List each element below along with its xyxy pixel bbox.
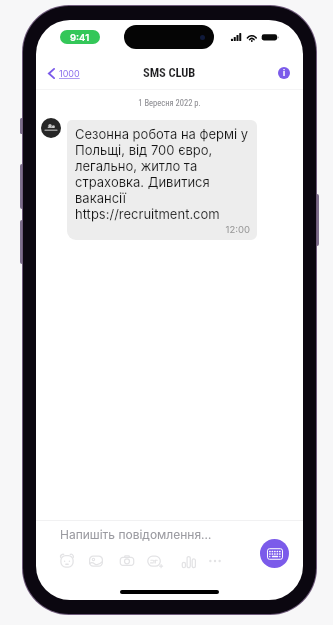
staticText: i	[283, 68, 286, 78]
staticText: SMS CLUB	[143, 65, 196, 80]
staticText: 1 Вересня 2022 р.	[36, 98, 303, 108]
button[interactable]: Audio	[181, 553, 197, 569]
button[interactable]: Camera	[119, 553, 135, 569]
button[interactable]: 1000	[45, 64, 83, 83]
staticText: 9:41	[70, 32, 90, 43]
button[interactable]: Gallery	[88, 553, 104, 569]
button[interactable]: More	[207, 553, 223, 569]
button[interactable]: Напишіть повідомлення…	[60, 525, 212, 544]
button[interactable]: Stickers	[59, 553, 75, 569]
button[interactable]: Сезонна робота на фермі у Польщі, від 70…	[67, 120, 257, 240]
button[interactable]: Keyboard	[260, 539, 289, 568]
button[interactable]: Sender avatar	[41, 118, 61, 138]
staticText: 1000	[59, 68, 80, 79]
staticText: Сезонна робота на фермі у Польщі, від 70…	[75, 126, 249, 222]
staticText: 12:00	[75, 224, 250, 235]
button[interactable]: GIF	[147, 553, 163, 569]
button[interactable]: Info	[278, 67, 290, 79]
